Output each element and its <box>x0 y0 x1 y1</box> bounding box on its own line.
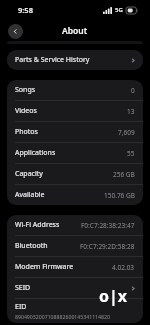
button[interactable]: Wi-Fi Address <box>7 215 143 235</box>
button[interactable]: Parts & Service History <box>7 50 143 70</box>
button[interactable]: EID <box>7 299 143 323</box>
button[interactable]: Songs <box>7 80 143 100</box>
button[interactable]: Available <box>7 185 143 205</box>
staticText: 0 <box>131 86 135 95</box>
staticText: Applications <box>15 148 56 158</box>
staticText: Capacity <box>15 169 43 179</box>
staticText: SEID <box>15 283 31 293</box>
staticText: Videos <box>15 106 37 116</box>
staticText: F0:C7:28:38:23:47 <box>81 221 135 230</box>
staticText: Wi-Fi Address <box>15 220 60 230</box>
staticText: 256 GB <box>113 170 135 179</box>
button[interactable]: Videos <box>7 101 143 121</box>
staticText: F0:C7:29:2D:58:28 <box>80 242 135 251</box>
staticText: Songs <box>15 85 36 95</box>
staticText: 7,609 <box>118 128 135 137</box>
staticText: 4.02.03 <box>112 263 135 272</box>
staticText: 5G <box>115 6 123 14</box>
button[interactable]: Applications <box>7 143 143 163</box>
staticText: About <box>62 25 88 37</box>
staticText: Available <box>15 190 45 200</box>
staticText: Parts & Service History <box>15 55 90 65</box>
staticText: 13 <box>127 107 135 116</box>
button[interactable]: SEID <box>7 278 143 298</box>
staticText: Modem Firmware <box>15 262 74 272</box>
button[interactable]: Back <box>8 24 23 39</box>
staticText: 55 <box>127 149 135 158</box>
staticText: 9:58 <box>18 5 33 15</box>
staticText: Bluetooth <box>15 241 48 251</box>
staticText: 150.76 GB <box>104 191 135 200</box>
button[interactable]: Modem Firmware <box>7 257 143 277</box>
button[interactable]: Bluetooth <box>7 236 143 256</box>
staticText: EID <box>15 302 27 312</box>
staticText: o|x <box>99 285 128 307</box>
button[interactable]: Capacity <box>7 164 143 184</box>
staticText: Photos <box>15 127 38 137</box>
button[interactable]: Photos <box>7 122 143 142</box>
staticText: 89049032007108882600145341114820 <box>15 313 110 320</box>
